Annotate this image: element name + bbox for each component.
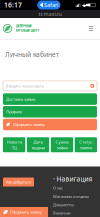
staticText: tcmaxi.ru: [38, 10, 61, 18]
staticText: Введите номер карты: [5, 83, 44, 88]
staticText: Вакансии: [53, 210, 70, 216]
button[interactable]: Дата: [27, 137, 49, 152]
staticText: О нас: [53, 185, 63, 191]
staticText: займа: [56, 145, 67, 150]
staticText: заявки: [80, 145, 92, 150]
staticText: Доставка займа: [6, 96, 35, 102]
staticText: Профиль: [6, 109, 22, 114]
staticText: Safari: [44, 1, 58, 9]
staticText: ТОРГОВЫЙ ЦЕНТР: [15, 29, 39, 32]
staticText: Документы: [53, 202, 74, 207]
button[interactable]: Вакансии: [53, 210, 70, 216]
staticText: выдачи: [32, 145, 45, 150]
staticText: ТЦ: [12, 145, 17, 150]
button[interactable]: Профиль: [3, 106, 97, 118]
button[interactable]: Сумма: [51, 137, 73, 152]
button[interactable]: Статус: [75, 137, 97, 152]
button[interactable]: О нас: [53, 185, 63, 191]
button[interactable]: Оформить заявку: [3, 119, 97, 130]
staticText: Дата: [33, 139, 42, 144]
staticText: Сумма: [55, 139, 68, 144]
staticText: Магазины и отделы: [53, 194, 89, 199]
staticText: Новости: [7, 139, 22, 144]
staticText: Оформить заявку: [13, 122, 45, 127]
button[interactable]: Оформить заявку: [0, 207, 48, 217]
staticText: ЦВЕТОЧНЫЙ: [15, 24, 31, 28]
button[interactable]: Документы: [53, 202, 74, 207]
button[interactable]: Menu: [86, 23, 96, 34]
button[interactable]: Как добраться: [3, 177, 34, 186]
staticText: 16:17: [4, 1, 22, 9]
button[interactable]: Доставка займа: [3, 93, 97, 105]
button[interactable]: Новости: [3, 137, 25, 152]
staticText: Личный кабинет: [5, 50, 59, 59]
staticText: Навигация: [56, 174, 92, 183]
staticText: Как добраться: [6, 179, 31, 185]
staticText: Оформить заявку: [10, 209, 42, 215]
staticText: Статус: [79, 139, 92, 144]
button[interactable]: Магазины и отделы: [53, 194, 89, 199]
